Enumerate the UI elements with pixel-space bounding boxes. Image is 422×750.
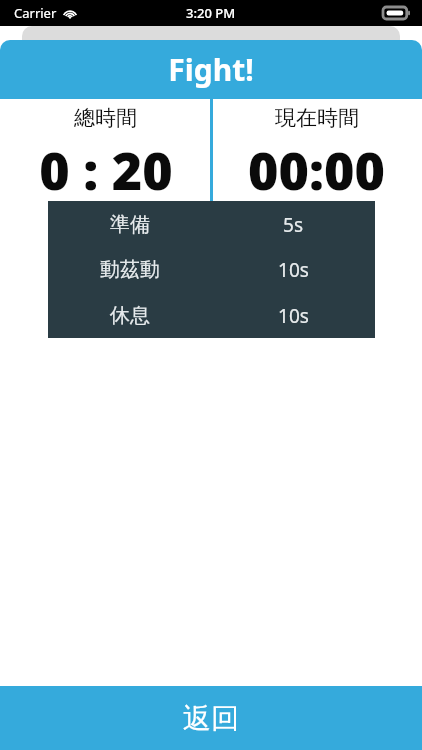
- staticText: 動茲動: [100, 257, 160, 282]
- button[interactable]: Fight!: [0, 40, 422, 99]
- staticText: 返回: [183, 701, 239, 736]
- staticText: 3:20 PM: [186, 4, 236, 22]
- staticText: 現在時間: [275, 105, 359, 131]
- staticText: 00:00: [248, 134, 385, 201]
- staticText: 10s: [278, 303, 309, 329]
- staticText: 5s: [283, 212, 303, 238]
- other: Battery: [383, 7, 410, 19]
- button[interactable]: 返回: [0, 686, 422, 750]
- staticText: 休息: [110, 303, 150, 328]
- staticText: Carrier: [14, 4, 57, 22]
- staticText: 10s: [278, 257, 309, 283]
- staticText: 0 : 20: [39, 134, 173, 201]
- button[interactable]: 動茲動: [48, 247, 375, 292]
- button[interactable]: 準備: [48, 202, 375, 247]
- staticText: 總時間: [74, 105, 137, 131]
- staticText: 準備: [110, 212, 150, 237]
- button[interactable]: 休息: [48, 293, 375, 338]
- staticText: Fight!: [168, 49, 254, 90]
